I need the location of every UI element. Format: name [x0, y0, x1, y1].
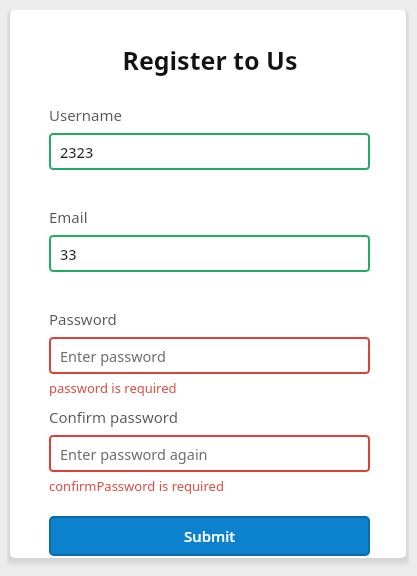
button[interactable]: Enter password again [49, 435, 370, 472]
button[interactable]: 33 [49, 235, 370, 272]
staticText: confirmPassword is required [49, 477, 224, 495]
staticText: password is required [49, 379, 177, 397]
staticText: Submit [184, 526, 235, 546]
button[interactable]: 2323 [49, 133, 370, 170]
button[interactable]: Enter password [49, 337, 370, 374]
staticText: Email [49, 207, 88, 227]
staticText: 33 [60, 244, 77, 264]
staticText: Enter password [60, 346, 166, 366]
staticText: Register to Us [122, 43, 298, 77]
staticText: 2323 [60, 142, 94, 162]
staticText: Enter password again [60, 444, 208, 464]
staticText: Username [49, 105, 122, 125]
staticText: Password [49, 309, 117, 329]
button[interactable]: Submit [49, 516, 370, 556]
staticText: Confirm password [49, 407, 178, 427]
